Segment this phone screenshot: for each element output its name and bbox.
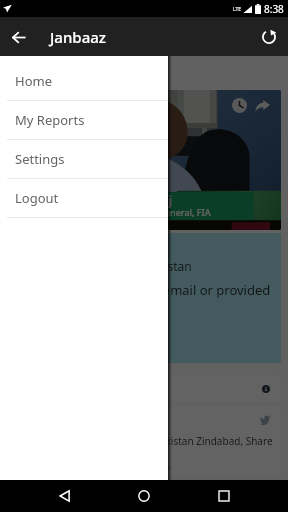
staticText: You can report through email or provided [17, 281, 271, 299]
button[interactable]: Recent [232, 98, 247, 113]
button[interactable]: Share [255, 98, 270, 113]
staticText: My Reports [15, 111, 85, 129]
staticText: Logout [15, 189, 59, 207]
button[interactable]: Recent [7, 90, 281, 230]
button[interactable]: Home [128, 480, 160, 512]
button[interactable]: Refresh [250, 18, 288, 56]
button[interactable]: Logout [0, 179, 168, 218]
button[interactable]: Settings [0, 140, 168, 179]
staticText: Settings [15, 150, 65, 168]
button[interactable]: Back [0, 18, 38, 56]
button[interactable]: Info [7, 375, 281, 403]
button[interactable]: Home [0, 62, 168, 101]
button[interactable]: Recents [208, 480, 240, 512]
button[interactable]: Info [262, 385, 270, 393]
staticText: Home [15, 72, 52, 90]
staticText: Hum sab ka Pakistan, Janbaz Pakistan Zin… [17, 434, 273, 448]
button[interactable]: My Reports [0, 101, 168, 140]
button[interactable]: Twitter [260, 414, 271, 425]
staticText: 8:38 [264, 2, 284, 16]
button[interactable]: Twitter [7, 407, 281, 477]
button[interactable]: Janbaaz Pakistan [7, 233, 281, 363]
staticText: Janbaaz [50, 27, 106, 47]
staticText: Janbaaz Pakistan [97, 258, 192, 274]
button[interactable]: Back [48, 480, 80, 512]
staticText: LTE [233, 6, 242, 13]
staticText: karain aur dekhain mazeed det... [17, 457, 171, 471]
staticText: Bashir Memon Janbaaj [38, 192, 173, 208]
staticText: Director General, FIA [121, 206, 211, 218]
